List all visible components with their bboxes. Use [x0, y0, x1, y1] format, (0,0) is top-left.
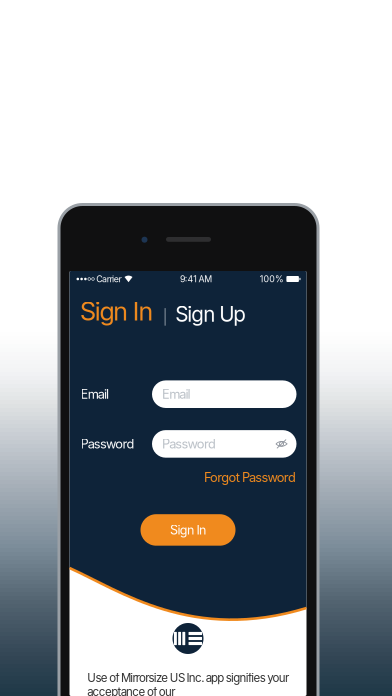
- button[interactable]: Password: [152, 430, 296, 458]
- staticText: 9:41 AM: [180, 274, 212, 284]
- staticText: Sign In: [80, 296, 153, 327]
- staticText: Forgot Password: [204, 469, 296, 485]
- button[interactable]: Forgot Password: [204, 469, 296, 485]
- staticText: Password: [162, 436, 216, 452]
- staticText: Password: [80, 436, 135, 452]
- staticText: Carrier: [96, 274, 121, 284]
- staticText: Sign Up: [175, 302, 246, 327]
- staticText: Email: [80, 386, 109, 402]
- button[interactable]: Sign In: [80, 296, 153, 327]
- staticText: Email: [162, 386, 191, 402]
- staticText: Sign In: [170, 522, 206, 538]
- button[interactable]: Sign Up: [175, 302, 246, 327]
- button[interactable]: Sign In: [140, 514, 235, 546]
- staticText: 100%: [260, 274, 284, 284]
- staticText: Use of Mirrorsize US Inc. app signifies …: [87, 671, 289, 696]
- button[interactable]: Email: [152, 380, 296, 408]
